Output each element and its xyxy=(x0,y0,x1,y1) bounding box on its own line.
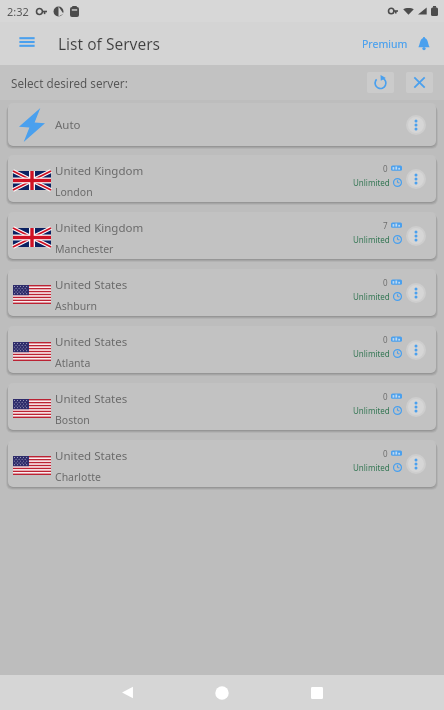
button[interactable]: More options xyxy=(401,392,431,422)
staticText: United Kingdom xyxy=(55,220,144,236)
button[interactable]: Auto xyxy=(8,103,436,146)
staticText: United States xyxy=(55,448,128,464)
staticText: Atlanta xyxy=(55,356,91,370)
button[interactable]: More options xyxy=(401,335,431,365)
staticText: 0 xyxy=(383,448,388,459)
staticText: Select desired server: xyxy=(11,75,128,91)
button[interactable]: More options xyxy=(401,278,431,308)
staticText: List of Servers xyxy=(58,33,161,54)
staticText: Unlimited xyxy=(353,291,390,302)
staticText: United States xyxy=(55,391,128,407)
staticText: Unlimited xyxy=(353,348,390,359)
button[interactable]: United States xyxy=(8,326,436,373)
staticText: Auto xyxy=(55,117,81,133)
button[interactable]: United States xyxy=(8,440,436,487)
staticText: Charlotte xyxy=(55,470,101,484)
staticText: Unlimited xyxy=(353,462,390,473)
button[interactable]: Premium xyxy=(362,37,431,51)
staticText: Unlimited xyxy=(353,234,390,245)
staticText: 0 xyxy=(383,277,388,288)
staticText: 0 xyxy=(383,163,388,174)
button[interactable]: Recents xyxy=(294,675,340,710)
staticText: Unlimited xyxy=(353,405,390,416)
staticText: 2:32 xyxy=(7,4,29,19)
staticText: 0 xyxy=(383,391,388,402)
staticText: Boston xyxy=(55,413,90,427)
button[interactable]: More options xyxy=(401,110,431,140)
staticText: 7 xyxy=(383,220,388,231)
button[interactable]: Back xyxy=(104,675,150,710)
button[interactable]: United Kingdom xyxy=(8,212,436,259)
button[interactable]: United States xyxy=(8,269,436,316)
button[interactable]: More options xyxy=(401,164,431,194)
staticText: United Kingdom xyxy=(55,163,144,179)
staticText: Ashburn xyxy=(55,299,97,313)
staticText: London xyxy=(55,185,93,199)
staticText: Premium xyxy=(362,37,408,51)
button[interactable]: More options xyxy=(401,221,431,251)
button[interactable]: Menu xyxy=(9,24,45,60)
button[interactable]: Refresh xyxy=(367,72,394,93)
button[interactable]: Close xyxy=(406,72,433,93)
staticText: United States xyxy=(55,277,128,293)
button[interactable]: Home xyxy=(199,675,245,710)
button[interactable]: United Kingdom xyxy=(8,155,436,202)
staticText: United States xyxy=(55,334,128,350)
staticText: Unlimited xyxy=(353,177,390,188)
staticText: Manchester xyxy=(55,242,114,256)
button[interactable]: More options xyxy=(401,449,431,479)
staticText: 0 xyxy=(383,334,388,345)
button[interactable]: United States xyxy=(8,383,436,430)
